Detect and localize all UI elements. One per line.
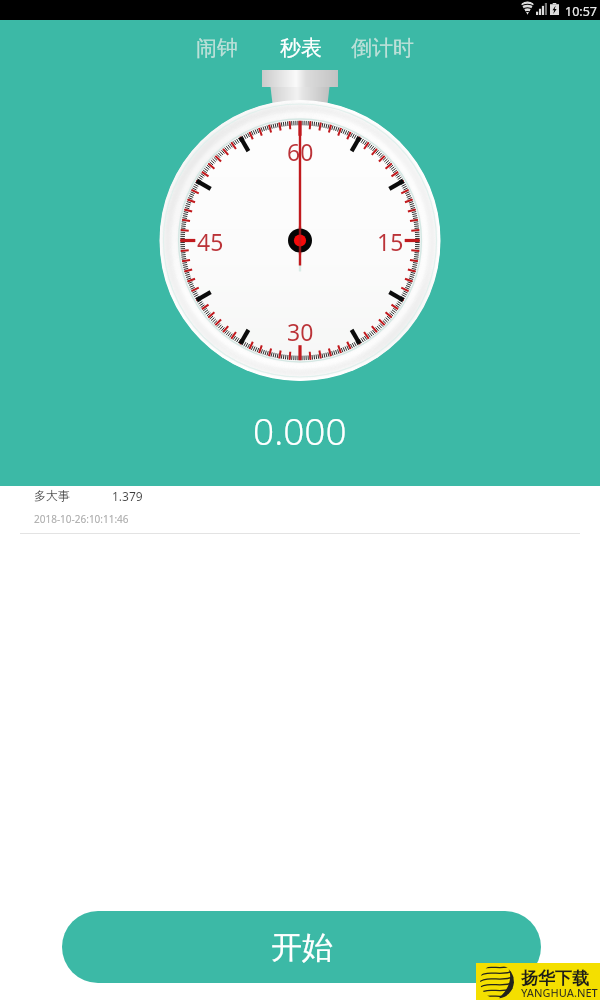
staticText: 45 — [197, 226, 224, 257]
staticText: 闹钟 — [196, 35, 238, 61]
staticText: 60 — [287, 136, 314, 167]
staticText: 倒计时 — [351, 35, 414, 61]
staticText: 10:57 — [565, 3, 597, 20]
staticText: 开始 — [271, 928, 333, 967]
button[interactable]: 倒计时 — [337, 32, 427, 64]
staticText: 30 — [287, 316, 314, 347]
staticText: YANGHUA.NET — [521, 985, 598, 1000]
staticText: 15 — [377, 226, 404, 257]
other: Battery charging — [550, 3, 559, 15]
button[interactable]: 开始 — [62, 911, 541, 983]
staticText: 多大事 — [34, 488, 70, 503]
other: Wi-Fi — [521, 3, 534, 15]
button[interactable]: 秒表 — [256, 32, 346, 64]
button[interactable]: 多大事 — [0, 486, 600, 534]
staticText: 2018-10-26:10:11:46 — [34, 512, 129, 526]
other: Signal strength — [536, 3, 547, 15]
staticText: 1.379 — [112, 488, 143, 504]
button[interactable]: 闹钟 — [172, 32, 262, 64]
staticText: 扬华下载 — [521, 968, 589, 989]
staticText: 秒表 — [280, 35, 322, 61]
staticText: 0.000 — [253, 405, 347, 455]
